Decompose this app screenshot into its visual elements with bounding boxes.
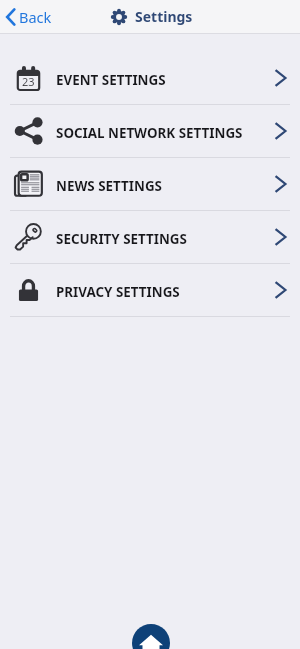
staticText: 23	[22, 74, 35, 89]
staticText: EVENT SETTINGS	[56, 71, 166, 89]
staticText: NEWS SETTINGS	[56, 177, 162, 195]
button[interactable]: NEWS SETTINGS	[0, 158, 300, 210]
staticText: Back	[19, 7, 52, 27]
staticText: PRIVACY SETTINGS	[56, 283, 180, 301]
staticText: SOCIAL NETWORK SETTINGS	[56, 124, 243, 142]
button[interactable]: 23	[0, 52, 300, 104]
button[interactable]: Back	[0, 3, 60, 31]
button[interactable]: SECURITY SETTINGS	[0, 211, 300, 263]
button[interactable]: Home	[132, 624, 170, 649]
staticText: Settings	[135, 7, 193, 26]
button[interactable]: SOCIAL NETWORK SETTINGS	[0, 105, 300, 157]
staticText: SECURITY SETTINGS	[56, 230, 187, 248]
button[interactable]: PRIVACY SETTINGS	[0, 264, 300, 316]
